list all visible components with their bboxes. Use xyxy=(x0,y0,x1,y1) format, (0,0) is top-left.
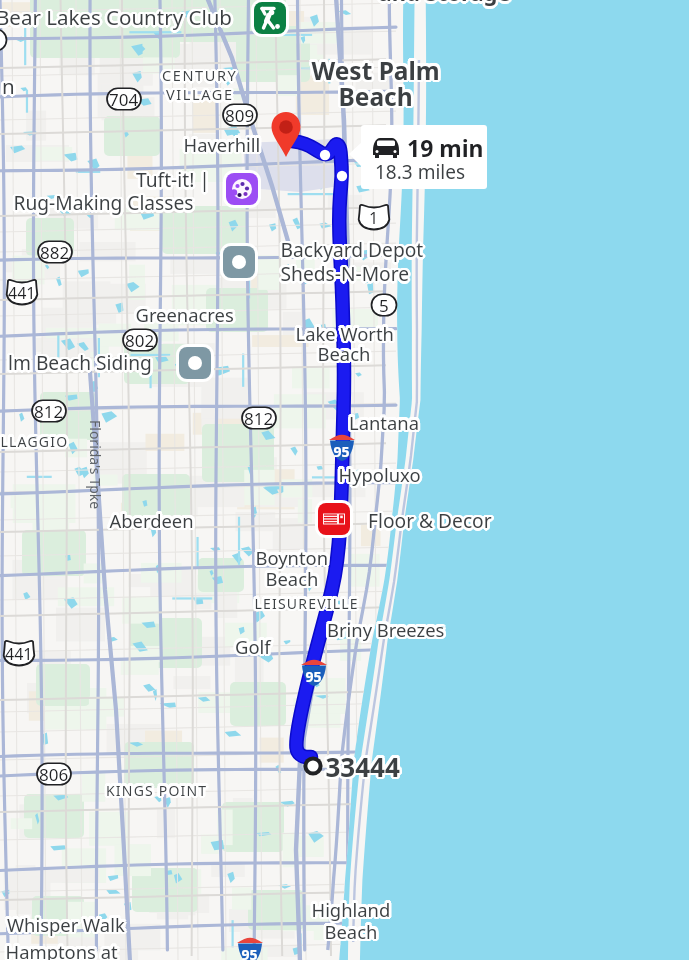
button[interactable]: Floor & Decor xyxy=(315,500,353,538)
button[interactable]: Tuft-it! Rug-Making Classes xyxy=(223,170,261,208)
button[interactable]: Map of the route from West Palm Beach to… xyxy=(0,0,689,960)
button[interactable]: 19 min, 18.3 miles route summary xyxy=(361,125,487,189)
button[interactable]: Backyard Depot Sheds-N-More xyxy=(220,243,258,281)
button[interactable]: Destination marker, Haverhill xyxy=(267,109,305,161)
button[interactable]: Palm Beach Siding xyxy=(176,344,214,382)
button[interactable]: Golf course xyxy=(251,0,289,37)
button[interactable]: Start marker, 33444 xyxy=(294,747,332,785)
